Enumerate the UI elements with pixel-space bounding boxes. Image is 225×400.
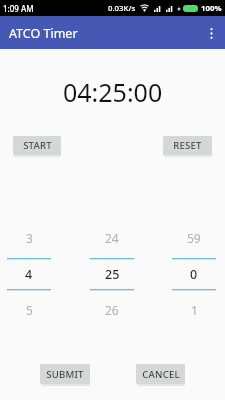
button[interactable]: CANCEL xyxy=(136,364,185,384)
button[interactable]: 59 xyxy=(172,217,216,321)
staticText: START xyxy=(23,139,52,152)
staticText: 4 xyxy=(25,266,33,282)
button[interactable]: RESET xyxy=(163,136,212,155)
staticText: 100% xyxy=(201,3,222,14)
staticText: ATCO Timer xyxy=(9,25,78,42)
button[interactable]: 3 xyxy=(7,217,51,321)
button[interactable]: 24 xyxy=(90,217,134,321)
staticText: 3 xyxy=(26,230,33,246)
staticText: 25 xyxy=(105,266,120,282)
staticText: 0 xyxy=(190,266,198,282)
staticText: RESET xyxy=(173,139,202,152)
button[interactable]: SUBMIT xyxy=(40,364,90,384)
staticText: 26 xyxy=(105,302,119,318)
button[interactable]: START xyxy=(13,136,61,155)
staticText: 59 xyxy=(187,230,201,246)
staticText: 04:25:00 xyxy=(63,75,163,109)
staticText: 1 xyxy=(191,302,198,318)
staticText: 5 xyxy=(26,302,33,318)
button[interactable]: More options xyxy=(197,19,225,47)
staticText: CANCEL xyxy=(142,368,180,381)
staticText: SUBMIT xyxy=(46,368,84,381)
staticText: 1:09 AM xyxy=(3,3,34,14)
staticText: 24 xyxy=(105,230,119,246)
staticText: 0.03K/s xyxy=(108,3,136,14)
